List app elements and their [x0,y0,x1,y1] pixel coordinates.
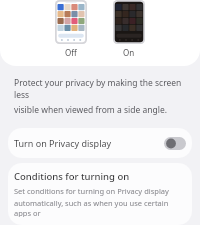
staticText: automatically, such as when you use cert… [14,198,184,217]
staticText: Turn on Privacy display [14,137,112,149]
staticText: Off [65,47,77,58]
staticText: Protect your privacy by making the scree… [14,77,186,101]
staticText: Set conditions for turning on Privacy di… [14,186,169,196]
button[interactable]: Turn on Privacy display [8,128,192,158]
staticText: On [123,47,135,58]
staticText: Conditions for turning on [14,170,130,183]
button[interactable]: Conditions for turning on [8,163,192,225]
button[interactable]: Turn on Privacy display [164,137,186,150]
staticText: visible when viewed from a side angle. [14,104,167,116]
